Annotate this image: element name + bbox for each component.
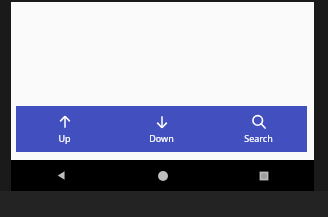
staticText: Down: [149, 132, 174, 144]
staticText: Up: [58, 132, 71, 144]
button[interactable]: Up: [16, 106, 113, 152]
button[interactable]: Back: [11, 160, 112, 191]
button[interactable]: Home: [112, 160, 213, 191]
button[interactable]: Recents: [213, 160, 314, 191]
button[interactable]: Down: [113, 106, 210, 152]
staticText: Search: [244, 132, 273, 144]
button[interactable]: Search: [210, 106, 307, 152]
